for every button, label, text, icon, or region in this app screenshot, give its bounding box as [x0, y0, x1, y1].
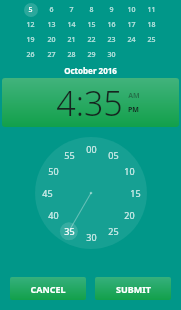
button[interactable]: 13	[41, 17, 61, 32]
button[interactable]: 10	[120, 162, 138, 180]
staticText: 35	[64, 225, 75, 237]
button[interactable]: 15	[126, 184, 144, 202]
staticText: 25	[108, 225, 119, 237]
staticText: 4:35	[56, 80, 123, 126]
button[interactable]: 28	[61, 47, 81, 62]
staticText: SUBMIT	[116, 283, 151, 295]
button[interactable]: 30	[101, 47, 121, 62]
button[interactable]: 35	[60, 222, 78, 240]
staticText: 13	[47, 20, 56, 30]
staticText: 30	[86, 231, 97, 243]
button[interactable]: CANCEL	[10, 277, 86, 300]
staticText: 8	[89, 5, 94, 15]
staticText: 21	[67, 35, 76, 45]
staticText: 10	[124, 165, 135, 177]
button[interactable]: 00	[82, 140, 100, 158]
button[interactable]: 18	[141, 17, 161, 32]
staticText: 9	[109, 5, 114, 15]
staticText: 18	[147, 20, 156, 30]
button[interactable]: 27	[41, 47, 61, 62]
staticText: 11	[147, 5, 156, 15]
button[interactable]: 17	[121, 17, 141, 32]
staticText: 20	[47, 35, 56, 45]
staticText: October 2016	[64, 65, 117, 76]
staticText: 29	[87, 50, 96, 60]
button[interactable]: 20	[41, 32, 61, 47]
button[interactable]: AM	[128, 91, 140, 101]
staticText: 05	[108, 149, 119, 161]
staticText: 00	[86, 143, 97, 155]
button[interactable]: 26	[20, 47, 41, 62]
button[interactable]: 05	[104, 146, 122, 164]
button[interactable]: 12	[20, 17, 41, 32]
staticText: PM	[128, 105, 139, 115]
button[interactable]: 4:35	[56, 80, 123, 126]
button[interactable]: 8	[81, 2, 101, 17]
button[interactable]: 25	[104, 222, 122, 240]
staticText: 45	[42, 187, 53, 199]
staticText: 50	[48, 165, 59, 177]
staticText: 7	[69, 5, 74, 15]
button[interactable]: 7	[61, 2, 81, 17]
button[interactable]: PM	[128, 105, 139, 115]
staticText: 5	[28, 5, 33, 15]
button[interactable]: 55	[60, 146, 78, 164]
staticText: 6	[49, 5, 54, 15]
button[interactable]: 11	[141, 2, 161, 17]
staticText: 24	[127, 35, 136, 45]
staticText: 16	[107, 20, 116, 30]
staticText: 19	[26, 35, 35, 45]
button[interactable]: 14	[61, 17, 81, 32]
staticText: 40	[48, 209, 59, 221]
button[interactable]: 10	[121, 2, 141, 17]
staticText: 25	[147, 35, 156, 45]
button[interactable]: SUBMIT	[95, 277, 171, 300]
staticText: 28	[67, 50, 76, 60]
staticText: 10	[127, 5, 136, 15]
staticText: 15	[130, 187, 141, 199]
staticText: 15	[87, 20, 96, 30]
button[interactable]: 16	[101, 17, 121, 32]
button[interactable]: 24	[121, 32, 141, 47]
button[interactable]: 23	[101, 32, 121, 47]
button[interactable]: 30	[82, 228, 100, 246]
staticText: 27	[47, 50, 56, 60]
button[interactable]: Minute dial	[35, 137, 147, 249]
staticText: 22	[87, 35, 96, 45]
button[interactable]: 50	[44, 162, 62, 180]
staticText: 55	[64, 149, 75, 161]
staticText: 26	[26, 50, 35, 60]
button[interactable]: 25	[141, 32, 161, 47]
staticText: 23	[107, 35, 116, 45]
staticText: 14	[67, 20, 76, 30]
staticText: 17	[127, 20, 136, 30]
button[interactable]: 20	[120, 206, 138, 224]
staticText: CANCEL	[30, 283, 66, 295]
button[interactable]: 9	[101, 2, 121, 17]
button[interactable]: 45	[38, 184, 56, 202]
staticText: AM	[128, 91, 140, 101]
staticText: 30	[107, 50, 116, 60]
button[interactable]: 22	[81, 32, 101, 47]
button[interactable]: 29	[81, 47, 101, 62]
button[interactable]: 5	[20, 2, 41, 17]
button[interactable]: 40	[44, 206, 62, 224]
staticText: 12	[26, 20, 35, 30]
staticText: 20	[124, 209, 135, 221]
button[interactable]: 6	[41, 2, 61, 17]
button[interactable]: 21	[61, 32, 81, 47]
button[interactable]: 19	[20, 32, 41, 47]
button[interactable]: 15	[81, 17, 101, 32]
